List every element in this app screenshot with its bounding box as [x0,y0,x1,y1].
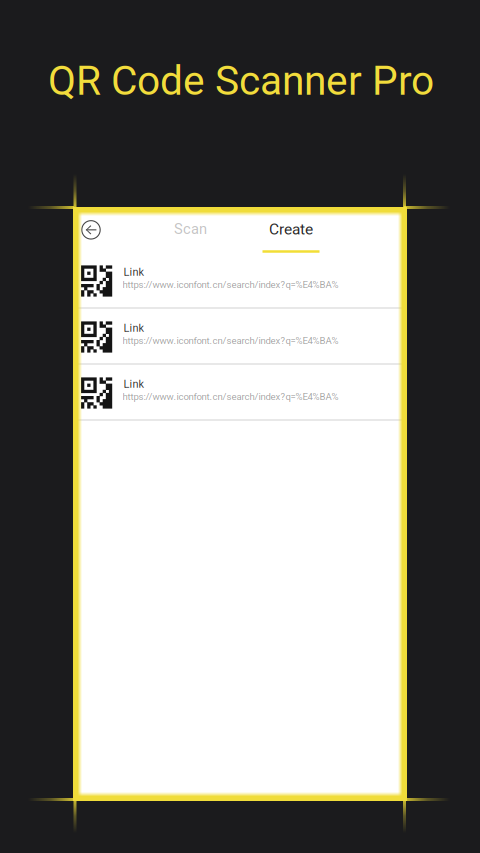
button[interactable]: Link [77,253,402,309]
button[interactable]: Link [77,309,402,365]
button[interactable]: Scan [153,208,227,250]
staticText: https://www.iconfont.cn/search/index?q=%… [122,335,338,346]
button[interactable]: Link [77,365,402,421]
staticText: Link [123,265,144,278]
staticText: Create [269,220,313,238]
button[interactable]: Back [77,210,101,240]
staticText: Link [123,321,144,334]
staticText: https://www.iconfont.cn/search/index?q=%… [122,391,338,402]
staticText: QR Code Scanner Pro [48,57,434,105]
button[interactable]: Create [254,210,328,254]
staticText: https://www.iconfont.cn/search/index?q=%… [122,279,338,290]
staticText: Scan [174,220,207,238]
staticText: Link [123,377,144,390]
